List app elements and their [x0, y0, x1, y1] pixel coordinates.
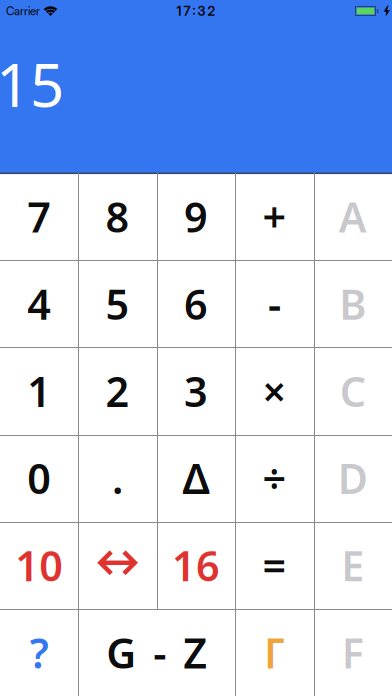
button[interactable]: C [314, 347, 392, 434]
staticText: = [262, 538, 286, 593]
staticText: 9 [184, 189, 208, 244]
button[interactable]: 8 [78, 173, 157, 260]
button[interactable]: A [314, 173, 392, 260]
staticText: G - Z [106, 625, 207, 680]
staticText: 7 [27, 189, 51, 244]
staticText: - [268, 276, 281, 331]
staticText: ? [30, 625, 49, 680]
button[interactable]: Δ [157, 434, 235, 522]
button[interactable]: - [235, 260, 314, 347]
button[interactable]: 10 [0, 522, 78, 609]
staticText: F [342, 625, 364, 680]
button[interactable]: 7 [0, 173, 78, 260]
staticText: 2 [106, 363, 130, 418]
staticText: Γ [264, 625, 285, 680]
staticText: ÷ [262, 451, 286, 505]
button[interactable]: Swap bases [78, 522, 157, 609]
staticText: 3 [184, 363, 208, 418]
staticText: 16 [172, 538, 220, 593]
staticText: 15 [0, 44, 64, 124]
staticText: 4 [27, 276, 51, 331]
button[interactable]: 0 [0, 434, 78, 522]
staticText: Carrier [6, 4, 40, 18]
button[interactable]: 2 [78, 347, 157, 434]
staticText: D [338, 451, 368, 505]
staticText: Δ [182, 451, 209, 505]
button[interactable]: = [235, 522, 314, 609]
button[interactable]: ? [0, 609, 78, 696]
button[interactable]: F [314, 609, 392, 696]
button[interactable]: 9 [157, 173, 235, 260]
button[interactable]: E [314, 522, 392, 609]
staticText: + [262, 189, 286, 244]
button[interactable]: 4 [0, 260, 78, 347]
staticText: C [340, 363, 366, 418]
staticText: . [112, 451, 123, 505]
button[interactable]: ÷ [235, 434, 314, 522]
staticText: 8 [106, 189, 130, 244]
staticText: 17:32 [176, 3, 215, 19]
button[interactable]: 3 [157, 347, 235, 434]
button[interactable]: × [235, 347, 314, 434]
staticText: 6 [184, 276, 208, 331]
button[interactable]: + [235, 173, 314, 260]
staticText: × [262, 363, 286, 418]
staticText: B [339, 276, 366, 331]
button[interactable]: 5 [78, 260, 157, 347]
staticText: E [341, 538, 364, 593]
staticText: 10 [15, 538, 63, 593]
button[interactable]: 1 [0, 347, 78, 434]
button[interactable]: D [314, 434, 392, 522]
button[interactable]: 6 [157, 260, 235, 347]
button[interactable]: B [314, 260, 392, 347]
staticText: 0 [27, 451, 51, 505]
button[interactable]: 16 [157, 522, 235, 609]
staticText: A [339, 189, 367, 244]
staticText: 1 [27, 363, 51, 418]
staticText: 5 [106, 276, 130, 331]
button[interactable]: G - Z [78, 609, 235, 696]
button[interactable]: Γ [235, 609, 314, 696]
button[interactable]: . [78, 434, 157, 522]
